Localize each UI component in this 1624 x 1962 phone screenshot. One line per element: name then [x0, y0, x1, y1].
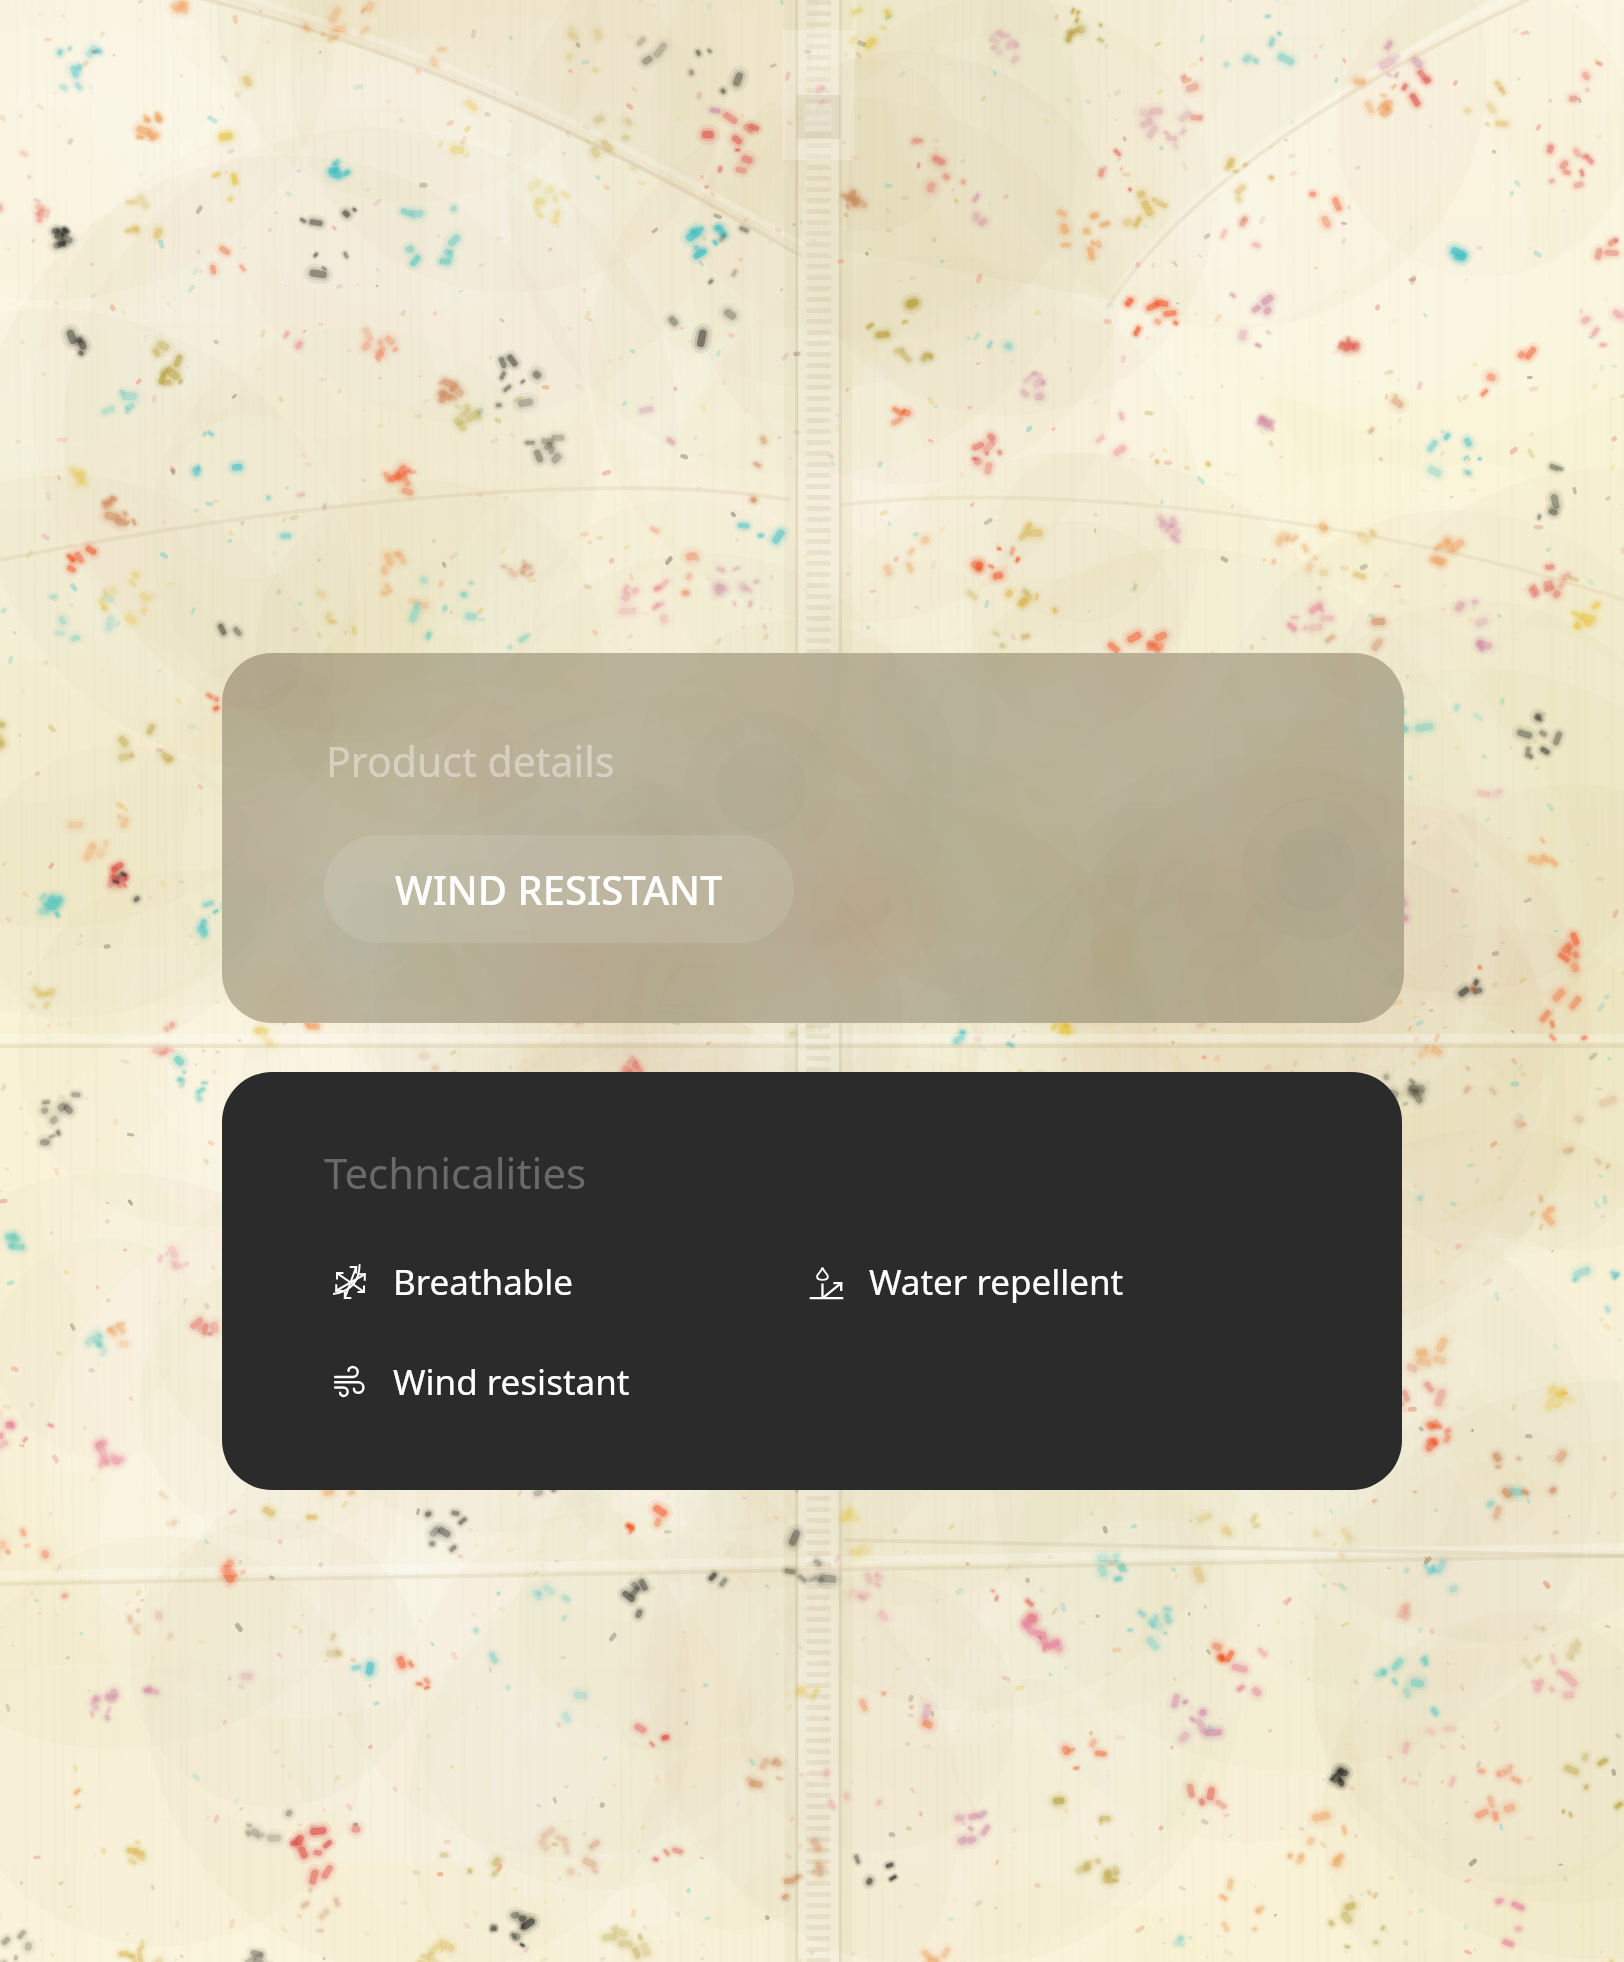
other: Breathable [333, 1265, 368, 1300]
button[interactable]: Wind resistant [333, 1358, 630, 1406]
other: Water repellent [809, 1265, 844, 1300]
staticText: Wind resistant [393, 1358, 630, 1406]
staticText: Water repellent [869, 1258, 1124, 1306]
button[interactable]: WIND RESISTANT [324, 835, 794, 943]
button[interactable]: Breathable [333, 1258, 574, 1306]
staticText: WIND RESISTANT [395, 862, 723, 916]
staticText: Breathable [393, 1258, 574, 1306]
other: Wind resistant [333, 1365, 368, 1400]
staticText: Product details [326, 733, 615, 789]
button[interactable]: Water repellent [809, 1258, 1124, 1306]
button[interactable]: Product details [222, 653, 1404, 1023]
button[interactable]: Technicalities [222, 1072, 1402, 1490]
staticText: Technicalities [324, 1144, 587, 1201]
